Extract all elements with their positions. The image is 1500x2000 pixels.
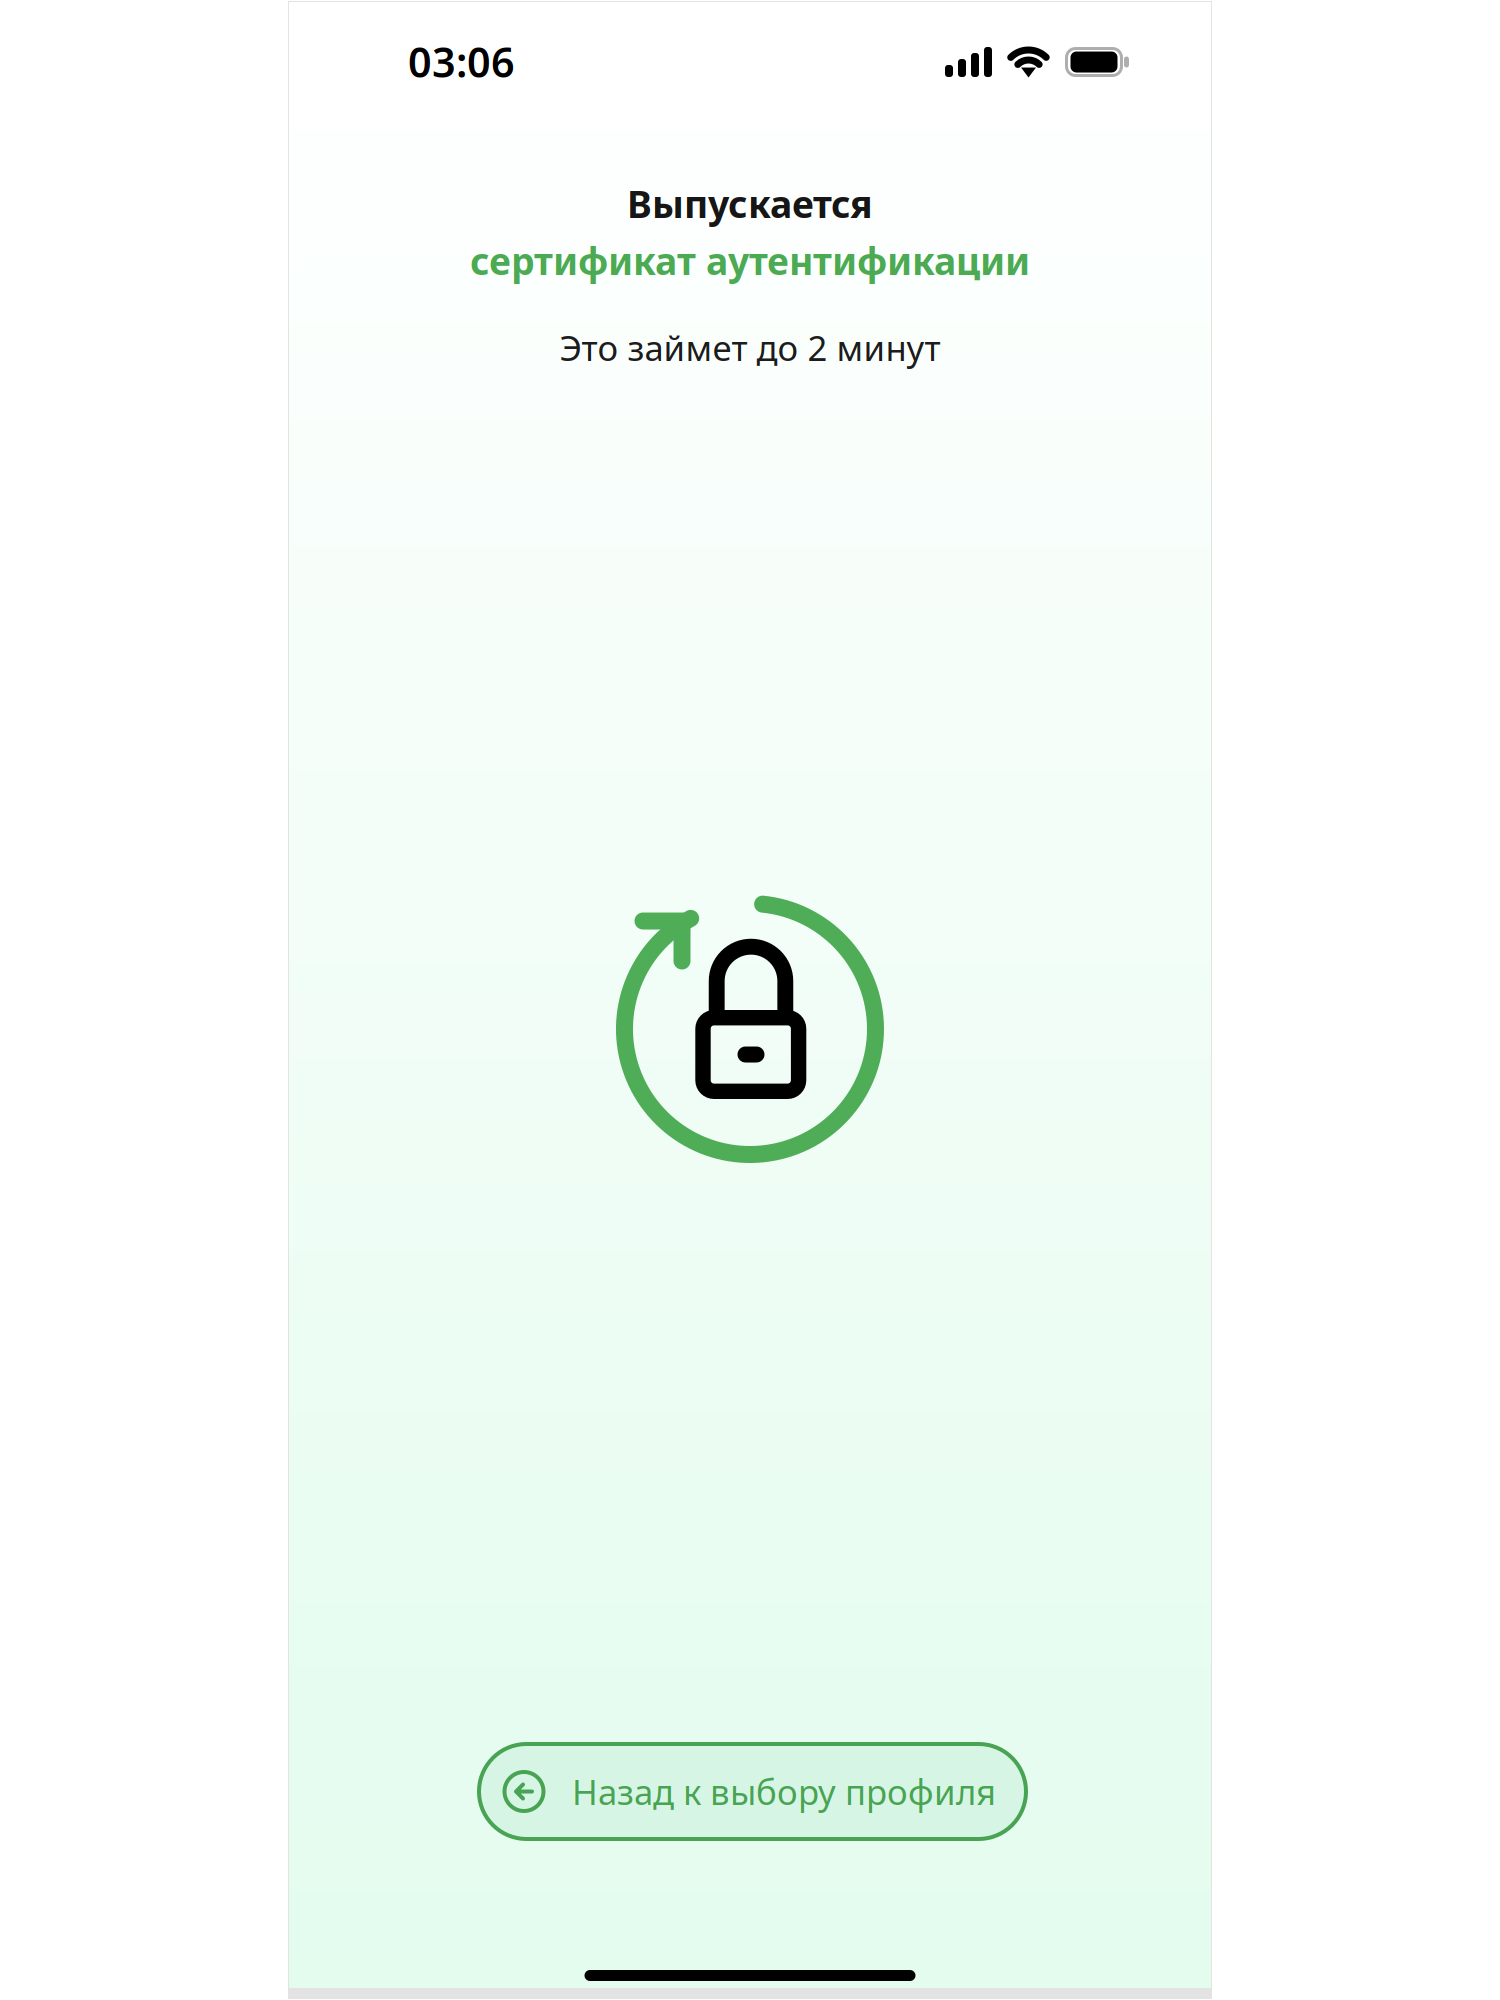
staticText: Назад к выбору профиля [572,1768,996,1814]
staticText: сертификат аутентификации [470,236,1030,285]
staticText: 03:06 [408,34,515,89]
staticText: Это займет до 2 минут [559,324,940,370]
button[interactable]: Назад к выбору профиля [477,1742,1028,1841]
staticText: Выпускается [627,179,873,228]
